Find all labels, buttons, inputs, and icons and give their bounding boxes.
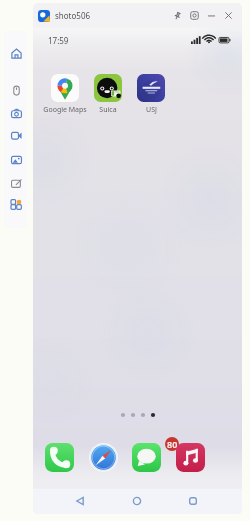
button[interactable]: Record screen [6, 125, 26, 145]
staticText: shoto506 [55, 10, 91, 21]
button[interactable]: Rotate [6, 149, 26, 169]
button[interactable]: Safari [88, 437, 137, 472]
button[interactable]: Screenshot [6, 103, 26, 123]
button[interactable]: Extended controls [6, 194, 26, 214]
button[interactable]: Close [220, 7, 237, 24]
button[interactable]: Home [129, 493, 145, 509]
staticText: Google Maps [43, 105, 87, 115]
button[interactable]: Screenshot [186, 7, 203, 24]
staticText: USJ [146, 105, 157, 115]
button[interactable]: Home [6, 43, 26, 63]
button[interactable]: Pin window [169, 7, 186, 24]
button[interactable]: Suica [78, 74, 138, 115]
button[interactable]: USJ [121, 74, 181, 115]
button[interactable]: Google Maps [35, 74, 95, 115]
button[interactable]: Music [175, 437, 224, 472]
button[interactable]: Minimise [203, 7, 220, 24]
button[interactable]: Phone [44, 437, 93, 472]
button[interactable]: Notes [6, 173, 26, 193]
button[interactable]: Messages [131, 437, 180, 472]
staticText: 17:59 [48, 35, 69, 46]
button[interactable]: Back [72, 493, 88, 509]
staticText: 80 [167, 438, 178, 450]
button[interactable]: Recents [185, 493, 201, 509]
button[interactable]: Power [6, 80, 26, 100]
staticText: Suica [99, 105, 117, 115]
